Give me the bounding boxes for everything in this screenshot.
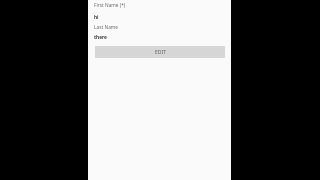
staticText: EDIT xyxy=(155,49,166,56)
staticText: First Name (*) xyxy=(94,2,126,9)
staticText: hi xyxy=(94,14,99,21)
button[interactable]: Edit profile xyxy=(95,46,225,58)
staticText: there xyxy=(94,34,107,41)
staticText: Last Name xyxy=(94,24,119,31)
